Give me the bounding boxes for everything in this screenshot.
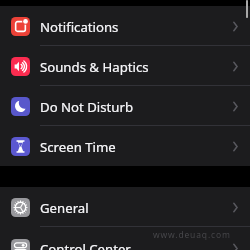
staticText: General [40, 199, 89, 217]
button[interactable]: Screen Time [0, 126, 250, 166]
button[interactable]: General [0, 187, 250, 227]
staticText: www.deuaq.com [153, 229, 231, 241]
button[interactable]: Do Not Disturb [0, 86, 250, 126]
staticText: Screen Time [40, 138, 116, 156]
button[interactable]: Sounds & Haptics [0, 46, 250, 86]
staticText: Notifications [40, 18, 119, 36]
staticText: Control Center [40, 240, 131, 250]
staticText: Do Not Disturb [40, 98, 134, 116]
staticText: Sounds & Haptics [40, 58, 149, 76]
button[interactable]: Control Center [0, 228, 250, 250]
button[interactable]: Notifications [0, 6, 250, 46]
